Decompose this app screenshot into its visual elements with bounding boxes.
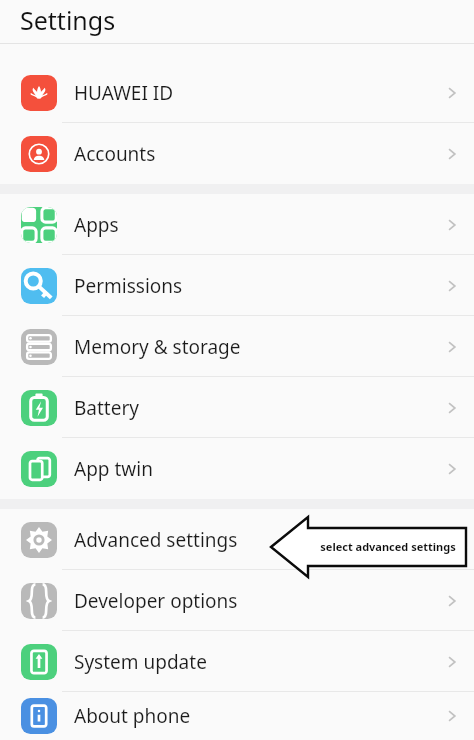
button[interactable]: Advanced settings bbox=[0, 509, 474, 570]
staticText: Permissions bbox=[74, 273, 444, 299]
staticText: Apps bbox=[74, 212, 444, 238]
button[interactable]: Developer options bbox=[0, 570, 474, 631]
button[interactable]: Memory & storage bbox=[0, 316, 474, 377]
button[interactable]: Apps bbox=[0, 194, 474, 255]
staticText: About phone bbox=[74, 703, 444, 729]
staticText: HUAWEI ID bbox=[74, 80, 444, 106]
staticText: Battery bbox=[74, 395, 444, 421]
button[interactable]: Permissions bbox=[0, 255, 474, 316]
button[interactable]: Accounts bbox=[0, 123, 474, 184]
button[interactable]: HUAWEI ID bbox=[0, 62, 474, 123]
button[interactable]: About phone bbox=[0, 692, 474, 740]
button[interactable]: Battery bbox=[0, 377, 474, 438]
staticText: Accounts bbox=[74, 141, 444, 167]
staticText: Developer options bbox=[74, 588, 444, 614]
staticText: Advanced settings bbox=[74, 527, 444, 553]
staticText: System update bbox=[74, 649, 444, 675]
staticText: Memory & storage bbox=[74, 334, 444, 360]
button[interactable]: App twin bbox=[0, 438, 474, 499]
staticText: select advanced settings bbox=[312, 539, 464, 554]
button[interactable]: System update bbox=[0, 631, 474, 692]
staticText: App twin bbox=[74, 456, 444, 482]
staticText: Settings bbox=[20, 3, 116, 37]
